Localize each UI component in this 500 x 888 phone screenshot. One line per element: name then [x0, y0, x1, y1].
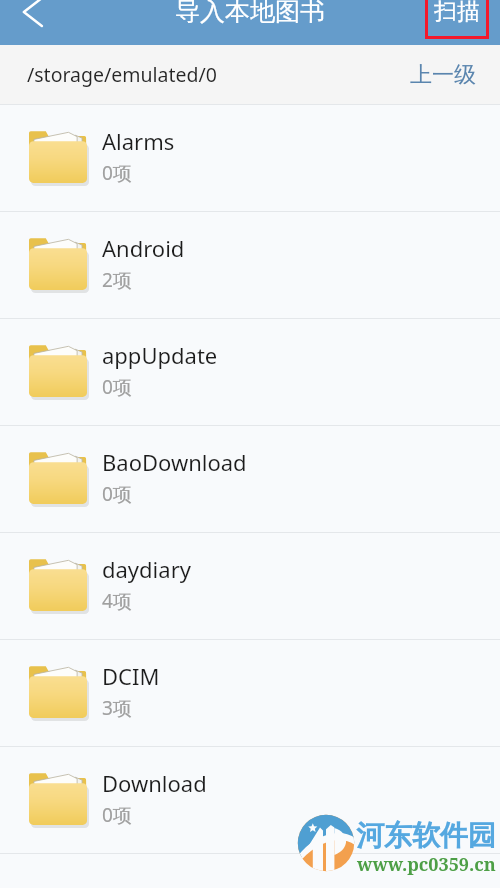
- staticText: DCIM: [102, 661, 160, 691]
- staticText: Android: [102, 233, 185, 263]
- button[interactable]: 上一级: [392, 45, 500, 104]
- staticText: 4项: [102, 588, 132, 614]
- button[interactable]: BaoDownload: [0, 426, 500, 532]
- staticText: 0项: [102, 802, 132, 828]
- staticText: appUpdate: [102, 340, 218, 370]
- button[interactable]: 扫描: [425, 0, 489, 39]
- staticText: 扫描: [434, 0, 480, 26]
- staticText: 0项: [102, 481, 132, 507]
- button[interactable]: Download: [0, 747, 500, 853]
- button[interactable]: Back: [0, 0, 66, 45]
- button[interactable]: Alarms: [0, 105, 500, 211]
- staticText: 0项: [102, 160, 132, 186]
- staticText: Download: [102, 768, 207, 798]
- button[interactable]: appUpdate: [0, 319, 500, 425]
- staticText: Alarms: [102, 126, 175, 156]
- staticText: 河东软件园: [356, 818, 496, 853]
- button[interactable]: DCIM: [0, 640, 500, 746]
- button[interactable]: Android: [0, 212, 500, 318]
- staticText: BaoDownload: [102, 447, 247, 477]
- staticText: 2项: [102, 267, 132, 293]
- staticText: 上一级: [410, 61, 476, 89]
- staticText: daydiary: [102, 554, 191, 584]
- button[interactable]: daydiary: [0, 533, 500, 639]
- staticText: www.pc0359.cn: [357, 852, 496, 877]
- staticText: 0项: [102, 374, 132, 400]
- staticText: /storage/emulated/0: [27, 61, 217, 88]
- staticText: 导入本地图书: [175, 0, 325, 27]
- staticText: 3项: [102, 695, 132, 721]
